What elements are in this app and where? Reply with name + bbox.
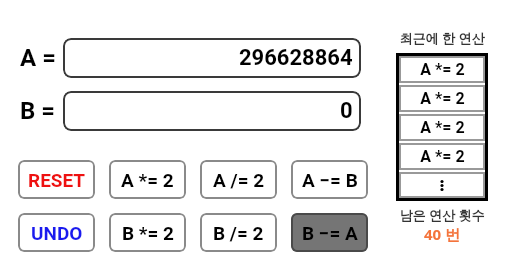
button[interactable]: 0 [63, 91, 361, 131]
staticText: UNDO [31, 222, 83, 244]
button[interactable]: UNDO [18, 213, 95, 252]
button[interactable]: 296628864 [63, 38, 361, 78]
button[interactable]: A *= 2 [399, 114, 485, 141]
staticText: B *= 2 [122, 222, 174, 244]
staticText: 40 번 [396, 224, 488, 244]
button[interactable]: A −= B [291, 160, 368, 199]
staticText: A *= 2 [420, 118, 465, 137]
staticText: A *= 2 [121, 169, 174, 191]
staticText: A *= 2 [420, 147, 465, 166]
staticText: B /= 2 [213, 222, 264, 244]
staticText: A /= 2 [213, 169, 265, 191]
staticText: B = [20, 97, 56, 125]
staticText: 남은 연산 횟수 [396, 206, 488, 224]
button[interactable]: A *= 2 [399, 143, 485, 170]
button[interactable]: B *= 2 [109, 213, 186, 252]
button[interactable]: A *= 2 [399, 85, 485, 112]
button[interactable]: B −= A [291, 213, 368, 252]
staticText: 0 [340, 98, 353, 124]
button[interactable]: A /= 2 [200, 160, 277, 199]
staticText: A *= 2 [420, 89, 465, 108]
staticText: RESET [28, 169, 86, 191]
button[interactable]: B /= 2 [200, 213, 277, 252]
button[interactable]: RESET [18, 160, 95, 199]
button[interactable]: A *= 2 [109, 160, 186, 199]
staticText: A −= B [302, 169, 358, 191]
staticText: B −= A [302, 222, 358, 244]
button[interactable]: More operations [399, 172, 485, 198]
staticText: A = [20, 44, 56, 72]
staticText: 최근에 한 연산 [396, 29, 488, 47]
button[interactable]: A *= 2 [399, 56, 485, 83]
staticText: A *= 2 [420, 60, 465, 79]
staticText: 296628864 [239, 45, 353, 71]
